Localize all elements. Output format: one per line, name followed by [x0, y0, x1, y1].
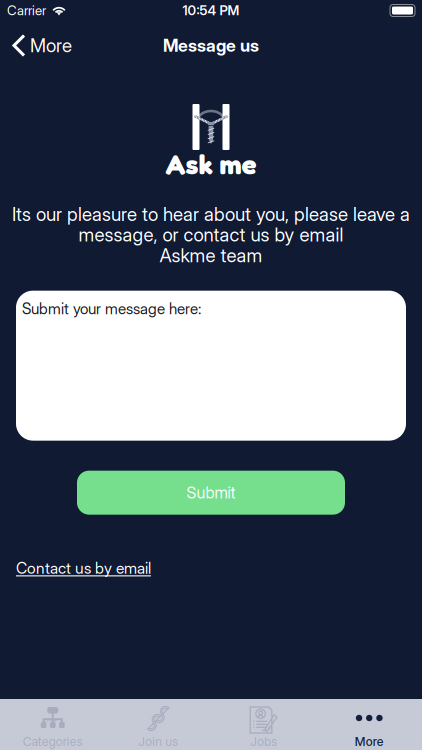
staticText: Ask me	[165, 147, 256, 181]
staticText: Carrier	[7, 2, 46, 18]
staticText: Message us	[163, 35, 259, 56]
staticText: Submit your message here:	[22, 300, 201, 318]
staticText: Its our pleasure to hear about you, plea…	[12, 203, 410, 225]
button[interactable]: Contact us by email	[16, 559, 151, 577]
staticText: Join us	[138, 734, 178, 749]
staticText: 10:54 PM	[182, 2, 239, 18]
button[interactable]: Submit	[77, 471, 345, 515]
button[interactable]: More	[316, 699, 422, 750]
button[interactable]: Categories	[0, 699, 105, 750]
staticText: Submit	[186, 483, 235, 502]
staticText: message, or contact us by email	[78, 223, 343, 246]
button[interactable]: Jobs	[211, 699, 316, 750]
staticText: Askme team	[159, 244, 262, 267]
staticText: Jobs	[250, 734, 277, 749]
button[interactable]: More	[0, 27, 82, 64]
staticText: More	[355, 734, 384, 749]
staticText: Contact us by email	[16, 559, 151, 577]
button[interactable]: Join us	[105, 699, 211, 750]
staticText: More	[30, 34, 72, 57]
staticText: Categories	[23, 734, 83, 749]
